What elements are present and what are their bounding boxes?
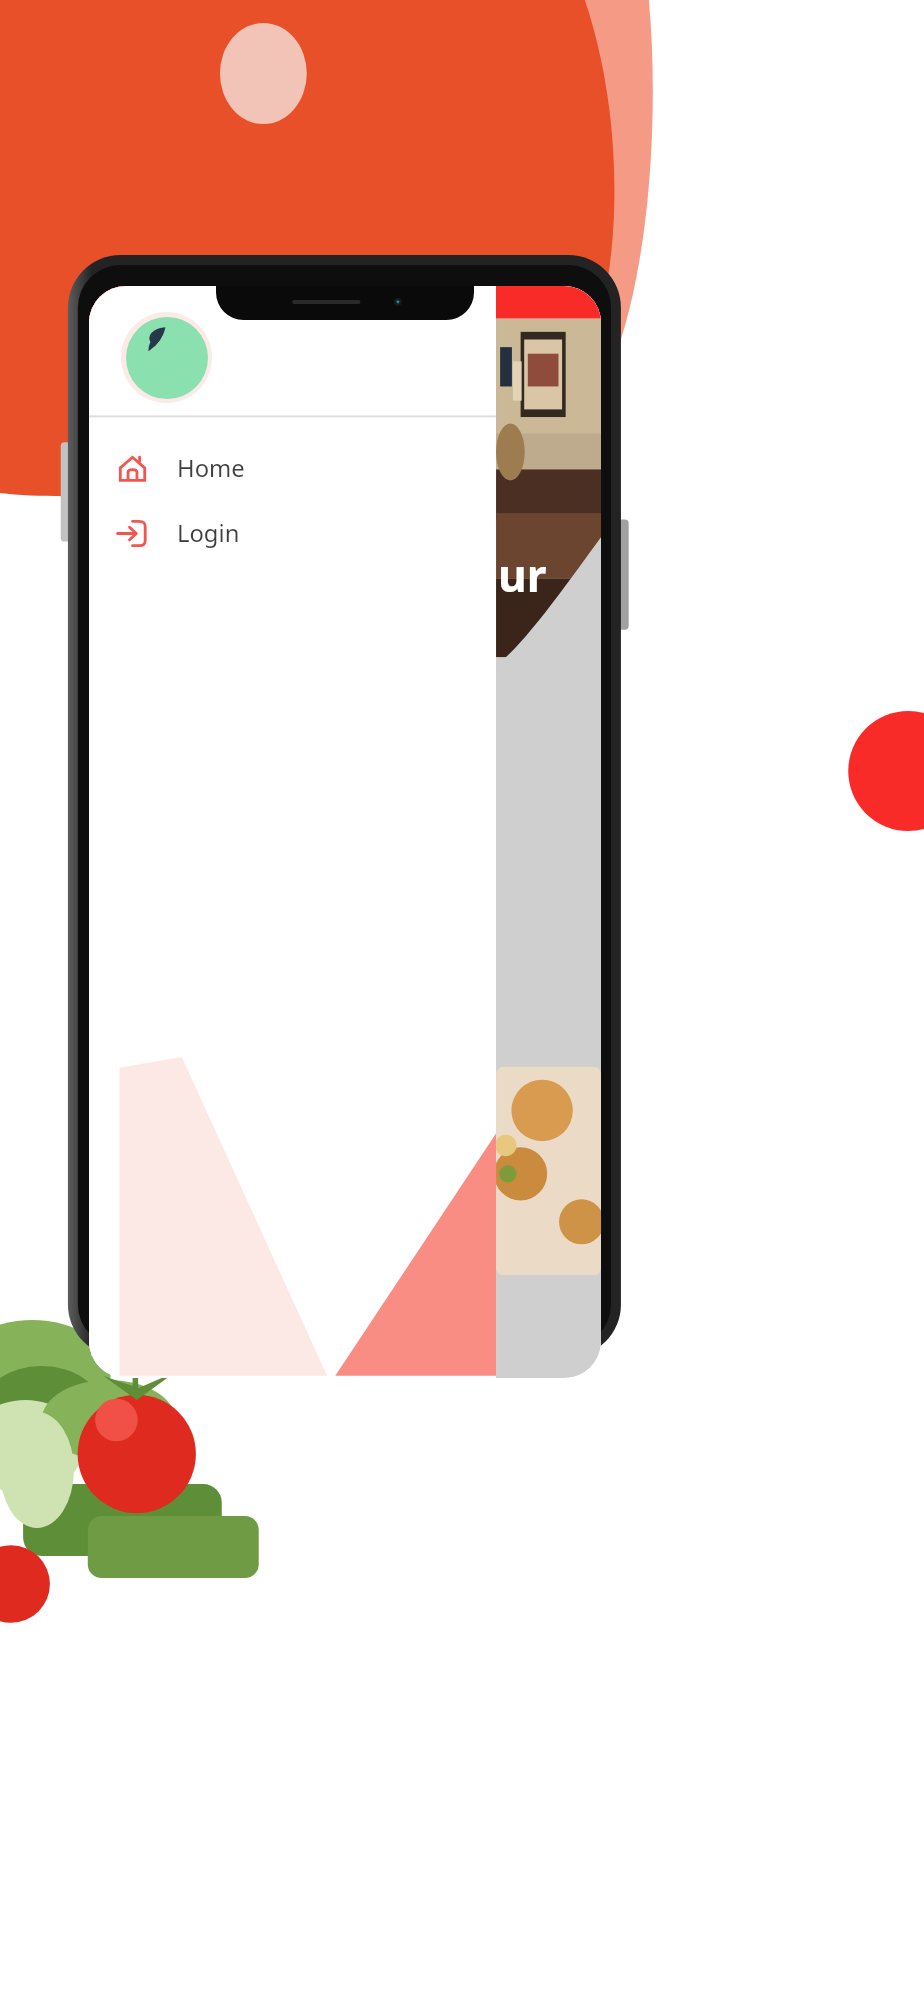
staticText: Home <box>177 452 245 484</box>
staticText: ur <box>498 545 547 605</box>
button[interactable]: Login <box>89 510 496 556</box>
button[interactable]: Home <box>89 445 496 491</box>
staticText: Login <box>177 517 240 549</box>
button[interactable]: Profile <box>121 312 212 403</box>
